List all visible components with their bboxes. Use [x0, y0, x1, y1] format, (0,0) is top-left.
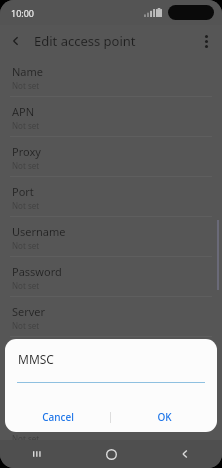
button[interactable]: MMS port	[0, 417, 222, 440]
staticText: Username	[12, 224, 66, 239]
button[interactable]: Proxy	[0, 137, 222, 177]
button[interactable]: Recent apps	[0, 440, 74, 468]
button[interactable]: Password	[0, 257, 222, 297]
staticText: Not set	[12, 200, 40, 211]
staticText: MMSC	[18, 351, 54, 367]
staticText: OK	[157, 410, 172, 424]
staticText: Not set	[12, 433, 40, 440]
button[interactable]: Username	[0, 217, 222, 257]
staticText: Not set	[12, 320, 40, 331]
button[interactable]: MMSC	[0, 337, 222, 377]
staticText: Not set	[12, 360, 40, 371]
staticText: 10:00	[11, 7, 35, 19]
staticText: Proxy	[12, 144, 41, 159]
staticText: Not set	[12, 160, 40, 171]
button[interactable]: Back	[0, 25, 32, 57]
button[interactable]: Cancel	[5, 402, 110, 432]
button[interactable]: APN	[0, 97, 222, 137]
button[interactable]: OK	[111, 402, 217, 432]
staticText: Not set	[12, 280, 40, 291]
button[interactable]: Port	[0, 177, 222, 217]
staticText: Password	[12, 264, 62, 279]
staticText: MMS port	[12, 417, 63, 432]
staticText: MMSC	[12, 344, 45, 359]
staticText: Edit access point	[34, 32, 190, 50]
button[interactable]: Home	[74, 440, 148, 468]
staticText: Not set	[12, 240, 40, 251]
staticText: Name	[12, 64, 44, 79]
staticText: Not set	[12, 80, 40, 91]
button[interactable]: More options	[190, 25, 222, 57]
staticText: APN	[12, 104, 35, 119]
button[interactable]: Server	[0, 297, 222, 337]
staticText: Server	[12, 304, 46, 319]
button[interactable]: Back	[148, 440, 222, 468]
staticText: Not set	[12, 120, 40, 131]
staticText: Cancel	[42, 410, 74, 424]
staticText: Port	[12, 184, 34, 199]
button[interactable]: Name	[0, 57, 222, 97]
button[interactable]: MMS proxy	[0, 377, 222, 417]
